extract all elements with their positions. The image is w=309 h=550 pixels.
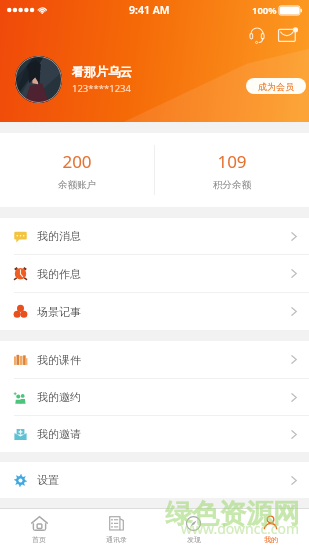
staticText: 200 — [62, 150, 92, 173]
staticText: 绿色资源网 — [165, 497, 300, 531]
button[interactable]: 发现 — [155, 509, 232, 550]
button[interactable]: 场景记事 — [0, 293, 309, 330]
staticText: 积分余额 — [213, 179, 251, 191]
staticText: 余额账户 — [58, 179, 96, 191]
staticText: 我的课件 — [37, 353, 81, 367]
staticText: 100% — [252, 4, 277, 17]
staticText: www.downcc.com — [181, 519, 300, 538]
staticText: 通讯录 — [106, 535, 127, 544]
staticText: 9:41 AM — [129, 3, 170, 17]
staticText: 123****1234 — [72, 82, 131, 95]
button[interactable]: 我的消息 — [0, 218, 309, 254]
staticText: 场景记事 — [37, 305, 81, 319]
button[interactable]: 200 — [0, 150, 154, 191]
button[interactable]: 成为会员 — [246, 78, 306, 94]
staticText: 109 — [217, 150, 247, 173]
staticText: 首页 — [32, 535, 46, 544]
staticText: 我的消息 — [37, 229, 81, 243]
staticText: 看那片乌云 — [72, 64, 132, 79]
staticText: 发现 — [187, 535, 201, 544]
button[interactable]: 首页 — [0, 509, 78, 550]
staticText: 我的 — [264, 535, 278, 544]
button[interactable]: 我的邀约 — [0, 379, 309, 415]
button[interactable]: 通讯录 — [78, 509, 155, 550]
button[interactable]: 我的课件 — [0, 341, 309, 378]
button[interactable]: Customer service — [244, 23, 269, 48]
staticText: 我的作息 — [37, 267, 81, 281]
button[interactable]: 109 — [155, 150, 309, 191]
button[interactable]: Avatar — [15, 56, 62, 103]
staticText: 我的邀约 — [37, 390, 81, 404]
button[interactable]: 我的 — [232, 509, 309, 550]
button[interactable]: 我的邀请 — [0, 416, 309, 452]
button[interactable]: Messages — [275, 23, 300, 48]
staticText: 设置 — [37, 473, 59, 487]
button[interactable]: 我的作息 — [0, 255, 309, 292]
staticText: 成为会员 — [258, 81, 294, 92]
button[interactable]: 设置 — [0, 462, 309, 498]
staticText: 我的邀请 — [37, 427, 81, 441]
